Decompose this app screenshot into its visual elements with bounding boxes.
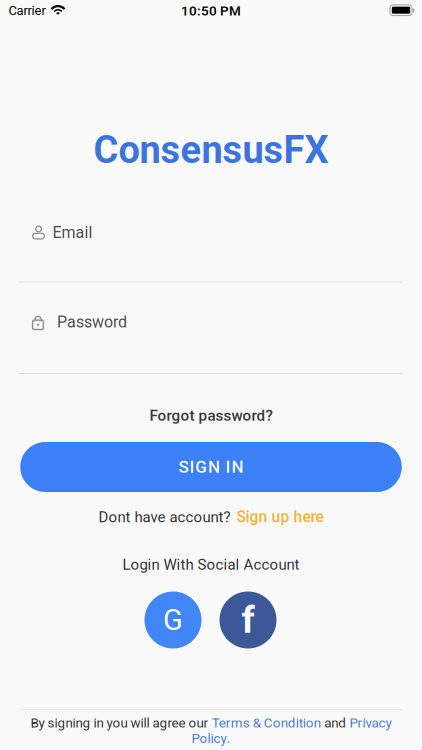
staticText: Password — [57, 313, 127, 331]
staticText: Policy. — [191, 731, 230, 746]
staticText: ConsensusFX — [93, 128, 328, 172]
button[interactable]: Password — [0, 305, 422, 339]
staticText: Sign up here — [236, 508, 323, 526]
button[interactable]: Terms & Condition — [212, 715, 321, 731]
button[interactable]: Sign in with Google — [144, 591, 201, 648]
staticText: Dont have account? — [98, 508, 230, 526]
staticText: and — [324, 715, 346, 731]
staticText: By signing in you will agree our — [30, 715, 208, 731]
button[interactable]: Email — [0, 215, 422, 249]
staticText: Carrier — [8, 3, 45, 18]
button[interactable]: Forgot password? — [149, 407, 272, 424]
staticText: f — [241, 598, 254, 642]
staticText: Email — [52, 223, 92, 242]
staticText: 10:50 PM — [181, 3, 241, 19]
button[interactable]: Sign in with Facebook — [219, 591, 276, 648]
staticText: SIGN IN — [179, 457, 243, 477]
staticText: Privacy — [350, 715, 392, 731]
button[interactable]: SIGN IN — [20, 442, 402, 492]
button[interactable]: Sign up here — [236, 508, 323, 526]
button[interactable]: Privacy Policy — [191, 731, 230, 746]
button[interactable]: Privacy — [350, 715, 392, 731]
staticText: Login With Social Account — [122, 556, 299, 573]
staticText: G — [163, 603, 183, 637]
staticText: Terms & Condition — [212, 715, 321, 731]
staticText: Forgot password? — [149, 407, 272, 424]
